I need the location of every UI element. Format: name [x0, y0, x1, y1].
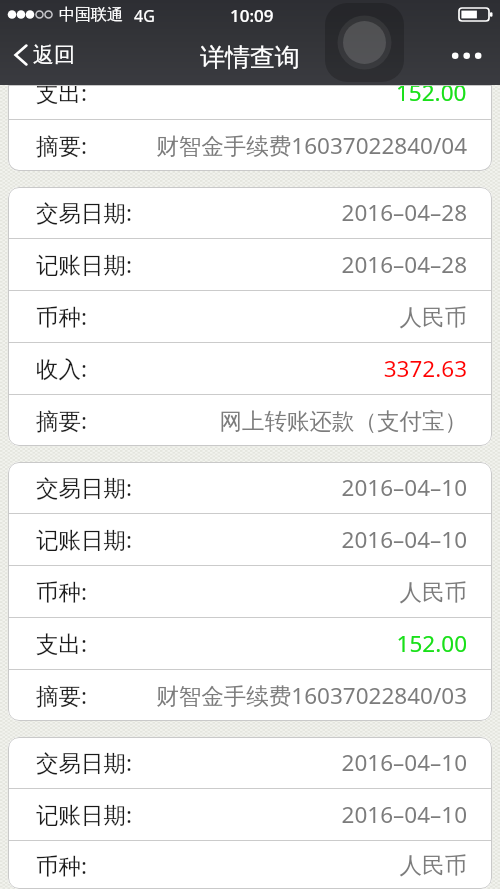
button[interactable]: 交易日期: [8, 462, 492, 513]
button[interactable]: 币种: [8, 841, 492, 889]
button[interactable]: 币种: [8, 566, 492, 617]
button[interactable]: 摘要: [8, 395, 492, 446]
button[interactable]: 记账日期: [8, 514, 492, 565]
staticText: 152.00 [396, 85, 467, 108]
button[interactable]: 币种: [8, 291, 492, 342]
staticText: 记账日期: [36, 249, 133, 280]
staticText: 收入: [36, 353, 88, 384]
button[interactable]: 返回 [0, 30, 89, 80]
staticText: 2016–04–10 [341, 747, 467, 778]
staticText: 币种: [36, 301, 88, 332]
staticText: 支出: [36, 628, 88, 659]
staticText: 中国联通 [59, 5, 123, 25]
button[interactable]: 收入: [8, 343, 492, 394]
staticText: 记账日期: [36, 799, 133, 830]
staticText: 2016–04–10 [341, 524, 467, 555]
staticText: 币种: [36, 850, 88, 881]
staticText: 人民币 [399, 578, 467, 606]
staticText: 记账日期: [36, 524, 133, 555]
staticText: 2016–04–28 [341, 249, 467, 280]
button[interactable]: 支出: [8, 618, 492, 669]
staticText: 币种: [36, 576, 88, 607]
staticText: 3372.63 [383, 353, 467, 384]
staticText: 支出: [36, 85, 88, 108]
button[interactable]: 支出: [8, 85, 492, 119]
button[interactable]: 交易日期: [8, 187, 492, 238]
button[interactable]: 记账日期: [8, 789, 492, 840]
staticText: 10:09 [230, 4, 274, 27]
staticText: 详情查询 [200, 42, 300, 73]
staticText: 交易日期: [36, 197, 133, 228]
staticText: 摘要: [36, 405, 88, 436]
staticText: 2016–04–10 [341, 472, 467, 503]
button[interactable]: 摘要: [8, 670, 492, 721]
staticText: 4G [134, 5, 155, 27]
button[interactable]: 摘要: [8, 120, 492, 171]
button[interactable]: More options [440, 36, 494, 76]
staticText: 2016–04–28 [341, 197, 467, 228]
staticText: 财智金手续费16037022840/03 [156, 680, 467, 711]
staticText: 交易日期: [36, 747, 133, 778]
staticText: 财智金手续费16037022840/04 [156, 130, 467, 161]
button[interactable]: 记账日期: [8, 239, 492, 290]
staticText: 交易日期: [36, 472, 133, 503]
staticText: 网上转账还款（支付宝） [219, 407, 467, 435]
staticText: 摘要: [36, 130, 88, 161]
button[interactable]: 交易日期: [8, 737, 492, 788]
staticText: 152.00 [396, 628, 467, 659]
staticText: 人民币 [399, 851, 467, 879]
staticText: 2016–04–10 [341, 799, 467, 830]
staticText: 返回 [33, 42, 75, 68]
staticText: 人民币 [399, 303, 467, 331]
staticText: 摘要: [36, 680, 88, 711]
